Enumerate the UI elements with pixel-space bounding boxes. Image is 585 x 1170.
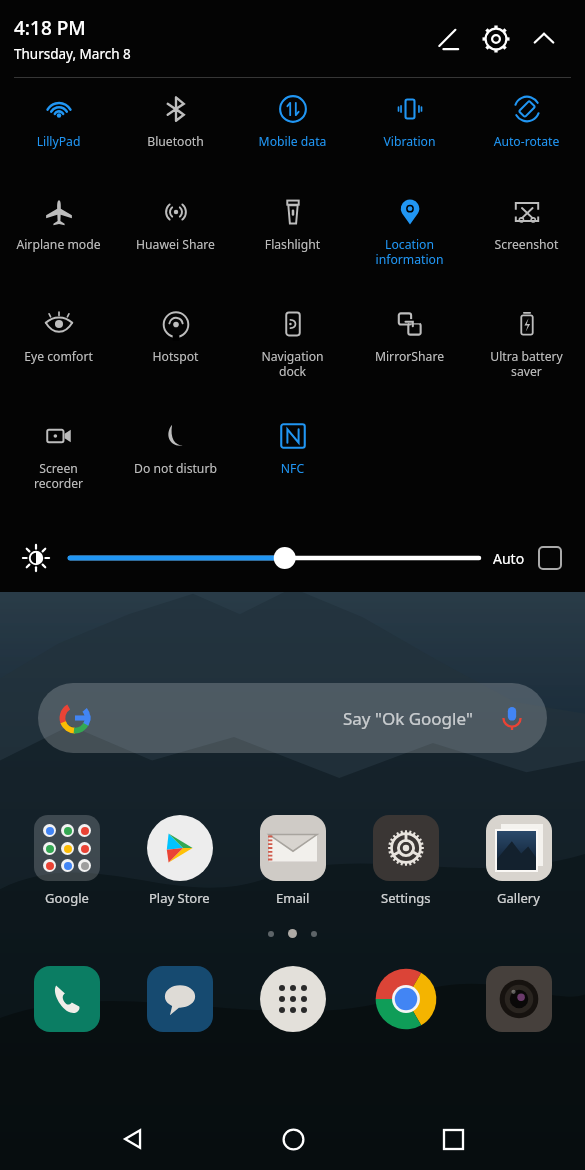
staticText: Thursday, March 8 xyxy=(14,45,131,63)
staticText: Auto-rotate xyxy=(468,133,585,150)
button[interactable]: Location information xyxy=(351,185,468,297)
staticText: LillyPad xyxy=(0,133,117,150)
staticText: Do not disturb xyxy=(117,460,234,477)
button[interactable]: NFC xyxy=(234,409,351,512)
staticText: Ultra battery saver xyxy=(468,348,585,379)
button[interactable]: Apps xyxy=(236,966,349,1032)
staticText: Vibration xyxy=(351,133,468,150)
button[interactable]: Eye comfort xyxy=(0,297,117,409)
button[interactable]: Bluetooth xyxy=(117,82,234,185)
button[interactable]: Auto-rotate xyxy=(468,82,585,185)
button[interactable]: Gallery xyxy=(462,815,575,907)
staticText: Google xyxy=(45,889,89,907)
button[interactable]: Mobile data xyxy=(234,82,351,185)
button[interactable]: Edit xyxy=(425,16,471,62)
button[interactable]: Email xyxy=(236,815,349,907)
button[interactable]: Screen recorder xyxy=(0,409,117,512)
button[interactable]: Phone xyxy=(10,966,123,1032)
button[interactable]: MirrorShare xyxy=(351,297,468,409)
button[interactable]: Brightness xyxy=(14,536,58,580)
button[interactable]: Back xyxy=(105,1111,161,1167)
staticText: Screen recorder xyxy=(0,460,117,491)
button[interactable]: Google xyxy=(10,815,123,907)
button[interactable] xyxy=(70,538,479,578)
button[interactable]: Screenshot xyxy=(468,185,585,297)
button[interactable]: Settings xyxy=(349,815,462,907)
button[interactable]: LillyPad xyxy=(0,82,117,185)
button[interactable]: Messages xyxy=(123,966,236,1032)
staticText: Gallery xyxy=(497,889,540,907)
staticText: Location information xyxy=(351,236,468,267)
staticText: Airplane mode xyxy=(0,236,117,253)
button[interactable]: Play Store xyxy=(123,815,236,907)
button[interactable]: Settings xyxy=(471,14,521,64)
staticText: 4:18 PM xyxy=(14,15,86,41)
staticText: Say "Ok Google" xyxy=(343,707,473,730)
staticText: Bluetooth xyxy=(117,133,234,150)
button[interactable]: Navigation dock xyxy=(234,297,351,409)
staticText: Huawei Share xyxy=(117,236,234,253)
button[interactable]: Vibration xyxy=(351,82,468,185)
button[interactable]: Say "Ok Google" xyxy=(38,683,547,753)
staticText: Flashlight xyxy=(234,236,351,253)
staticText: Eye comfort xyxy=(0,348,117,365)
button[interactable]: Huawei Share xyxy=(117,185,234,297)
button[interactable]: Hotspot xyxy=(117,297,234,409)
staticText: Navigation dock xyxy=(234,348,351,379)
staticText: Screenshot xyxy=(468,236,585,253)
staticText: Auto xyxy=(493,549,525,568)
button[interactable]: Flashlight xyxy=(234,185,351,297)
staticText: Hotspot xyxy=(117,348,234,365)
button[interactable]: Auto brightness xyxy=(537,545,563,571)
button[interactable]: Home xyxy=(265,1111,321,1167)
staticText: Settings xyxy=(381,889,431,907)
staticText: MirrorShare xyxy=(351,348,468,365)
button[interactable]: Ultra battery saver xyxy=(468,297,585,409)
button[interactable]: Do not disturb xyxy=(117,409,234,512)
button[interactable]: Chrome xyxy=(349,966,462,1032)
button[interactable]: Camera xyxy=(462,966,575,1032)
staticText: NFC xyxy=(234,460,351,477)
button[interactable]: Collapse xyxy=(521,16,567,62)
button[interactable]: Airplane mode xyxy=(0,185,117,297)
staticText: Mobile data xyxy=(234,133,351,150)
staticText: Play Store xyxy=(149,889,210,907)
button[interactable]: Recents xyxy=(425,1111,481,1167)
staticText: Email xyxy=(276,889,310,907)
